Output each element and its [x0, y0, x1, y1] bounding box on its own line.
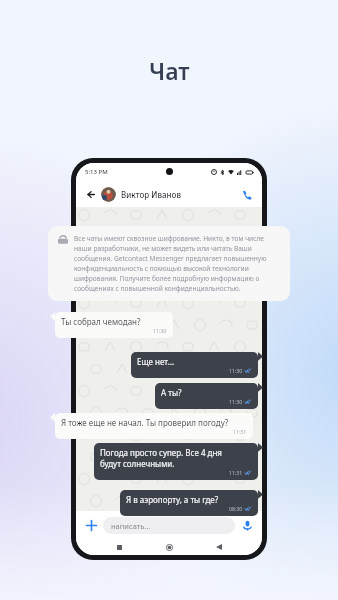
staticText: написать... [111, 521, 151, 531]
button[interactable]: Attach [83, 517, 99, 533]
staticText: А ты? [161, 387, 182, 398]
staticText: Еще нет... [137, 356, 175, 367]
button[interactable]: Я тоже еще не начал. Ты проверил погоду? [55, 413, 253, 439]
staticText: Чат [149, 55, 190, 86]
staticText: 5:13 PM [85, 168, 108, 176]
button[interactable]: Call [239, 187, 254, 202]
staticText: 11:30 [229, 367, 243, 374]
staticText: Все чаты имеют сквозное шифрование. Никт… [74, 234, 280, 293]
staticText: 11:30 [153, 327, 167, 334]
button[interactable]: Home [162, 540, 176, 554]
button[interactable]: Я в аэропорту, а ты где? [120, 490, 258, 516]
button[interactable]: Ты собрал чемодан? [55, 312, 173, 338]
button[interactable]: написать... [103, 517, 235, 534]
button[interactable]: Еще нет... [131, 352, 258, 378]
button[interactable]: Recents [112, 540, 126, 554]
staticText: Погода просто супер. Все 4 дня будут сол… [100, 447, 222, 469]
staticText: Ты собрал чемодан? [61, 316, 141, 327]
staticText: Виктор Иванов [121, 189, 239, 200]
staticText: 11:30 [229, 398, 243, 405]
button[interactable]: Back [84, 187, 98, 201]
staticText: Я тоже еще не начал. Ты проверил погоду? [61, 417, 229, 428]
staticText: 08:30 [229, 505, 243, 512]
button[interactable]: А ты? [155, 383, 258, 409]
button[interactable]: Погода просто супер. Все 4 дня будут сол… [94, 443, 258, 480]
button[interactable]: Back [212, 540, 226, 554]
staticText: 11:31 [233, 428, 247, 435]
button[interactable]: Все чаты имеют сквозное шифрование. Никт… [48, 226, 290, 301]
staticText: 11:31 [229, 469, 243, 476]
staticText: Я в аэропорту, а ты где? [126, 494, 219, 505]
button[interactable]: Voice message [239, 517, 255, 533]
